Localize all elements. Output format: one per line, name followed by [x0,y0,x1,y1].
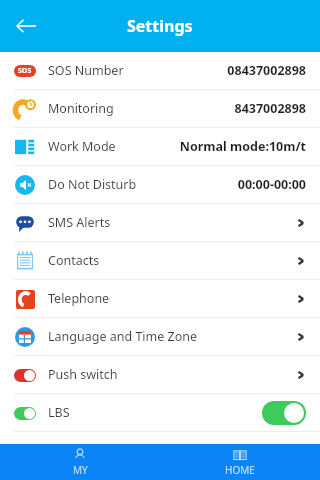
staticText: Normal mode:10m/t [179,138,306,155]
button[interactable]: LBS [0,394,320,431]
button[interactable]: Monitoring [0,90,320,127]
button[interactable]: Language and Time Zone [0,318,320,355]
staticText: LBS [48,404,70,421]
button[interactable]: Telephone [0,280,320,317]
staticText: Work Mode [48,138,116,155]
staticText: MY [73,463,88,477]
staticText: 08437002898 [227,62,306,79]
staticText: Push switch [48,366,118,383]
staticText: Do Not Disturb [48,176,137,193]
button[interactable]: MY [0,444,160,480]
button[interactable]: LBS toggle [262,401,306,425]
staticText: 00:00-00:00 [237,176,306,193]
staticText: Telephone [48,290,110,307]
button[interactable]: Push switch [0,356,320,393]
button[interactable]: Do Not Disturb [0,166,320,203]
staticText: SOS [18,66,32,76]
staticText: SMS Alerts [48,214,111,231]
staticText: Language and Time Zone [48,328,198,345]
staticText: Contacts [48,252,100,269]
staticText: Settings [127,15,193,37]
button[interactable]: HOME [160,444,320,480]
staticText: SOS Number [48,62,124,79]
button[interactable]: Back [4,4,48,48]
staticText: 8437002898 [234,100,306,117]
button[interactable]: SMS Alerts [0,204,320,241]
button[interactable]: Work Mode [0,128,320,165]
staticText: Monitoring [48,100,114,117]
button[interactable]: Contacts [0,242,320,279]
button[interactable]: SOS [0,52,320,89]
staticText: HOME [225,463,255,477]
